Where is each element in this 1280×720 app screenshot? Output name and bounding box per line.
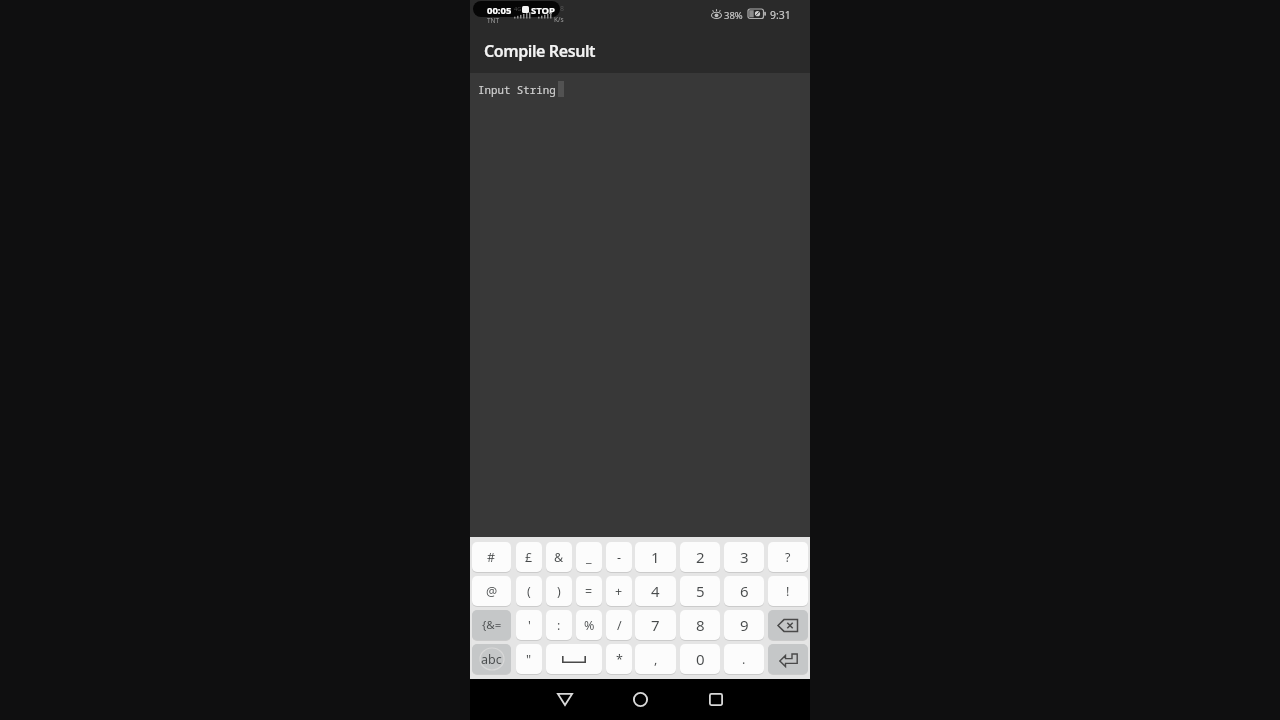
button[interactable]: & <box>546 542 572 572</box>
staticText: {&= <box>482 617 502 633</box>
staticText: 1 <box>651 547 660 567</box>
button[interactable]: ) <box>546 576 572 606</box>
button[interactable] <box>546 644 602 674</box>
button[interactable]: * <box>606 644 632 674</box>
staticText: 00:05 <box>487 4 512 17</box>
staticText: 7 <box>651 615 660 635</box>
staticText: 0 <box>696 649 705 669</box>
staticText: * <box>616 651 623 668</box>
button[interactable]: £ <box>516 542 542 572</box>
button[interactable]: ! <box>768 576 808 606</box>
staticText: ! <box>786 583 790 600</box>
staticText: £ <box>525 549 533 566</box>
button[interactable]: / <box>606 610 632 640</box>
button[interactable]: , <box>635 644 676 674</box>
button[interactable]: 2 <box>680 542 720 572</box>
button[interactable] <box>698 681 734 717</box>
staticText: 9 <box>740 615 749 635</box>
staticText: - <box>617 549 622 566</box>
staticText: " <box>526 651 532 668</box>
staticText: 8 <box>696 615 705 635</box>
staticText: # <box>487 549 496 566</box>
staticText: 8 <box>560 4 565 14</box>
button[interactable]: 4 <box>635 576 676 606</box>
button[interactable] <box>768 644 808 674</box>
staticText: abc <box>481 651 502 668</box>
staticText: 5 <box>696 581 705 601</box>
staticText: STOP <box>531 4 555 17</box>
button[interactable]: " <box>516 644 542 674</box>
button[interactable]: % <box>576 610 602 640</box>
button[interactable]: ( <box>516 576 542 606</box>
button[interactable]: ? <box>768 542 808 572</box>
staticText: : <box>557 617 561 634</box>
button[interactable]: 6 <box>724 576 764 606</box>
staticText: 6 <box>740 581 749 601</box>
button[interactable]: 9 <box>724 610 764 640</box>
button[interactable]: abc <box>472 644 511 674</box>
staticText: 9:31 <box>770 8 791 22</box>
button[interactable]: 3 <box>724 542 764 572</box>
button[interactable]: 7 <box>635 610 676 640</box>
button[interactable]: + <box>606 576 632 606</box>
staticText: ( <box>527 583 531 600</box>
button[interactable]: 1 <box>635 542 676 572</box>
staticText: . <box>742 651 746 668</box>
button[interactable] <box>768 610 808 640</box>
button[interactable] <box>547 681 583 717</box>
button[interactable]: = <box>576 576 602 606</box>
staticText: ) <box>557 583 561 600</box>
button[interactable]: # <box>472 542 511 572</box>
button[interactable]: ' <box>516 610 542 640</box>
staticText: = <box>585 583 593 600</box>
staticText: / <box>617 617 622 634</box>
staticText: ' <box>528 617 531 634</box>
staticText: 4G <box>514 5 522 12</box>
button[interactable]: 0 <box>680 644 720 674</box>
staticText: 2 <box>696 547 705 567</box>
button[interactable]: . <box>724 644 764 674</box>
staticText: + <box>615 583 623 600</box>
button[interactable]: {&= <box>472 610 511 640</box>
staticText: 4 <box>651 581 660 601</box>
staticText: Input String <box>478 82 556 97</box>
staticText: , <box>654 651 658 668</box>
staticText: TNT <box>487 16 500 25</box>
button[interactable]: 8 <box>680 610 720 640</box>
staticText: % <box>584 617 595 634</box>
button[interactable]: _ <box>576 542 602 572</box>
staticText: 3 <box>740 547 749 567</box>
staticText: 38% <box>724 9 743 22</box>
button[interactable]: - <box>606 542 632 572</box>
button[interactable]: 5 <box>680 576 720 606</box>
button[interactable] <box>473 1 560 17</box>
staticText: K/s <box>554 15 564 24</box>
staticText: _ <box>586 549 592 566</box>
staticText: ? <box>785 549 791 566</box>
button[interactable] <box>622 681 658 717</box>
staticText: @ <box>486 583 498 600</box>
staticText: Compile Result <box>484 40 596 62</box>
staticText: & <box>554 549 564 566</box>
button[interactable]: : <box>546 610 572 640</box>
button[interactable]: @ <box>472 576 511 606</box>
